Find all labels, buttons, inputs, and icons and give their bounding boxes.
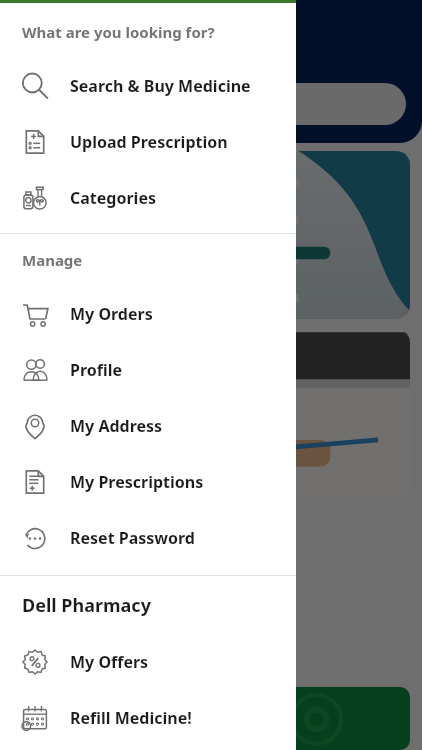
staticText: Manage — [22, 250, 83, 270]
button[interactable] — [0, 0, 422, 750]
button[interactable]: Reset Password — [0, 510, 296, 566]
staticText: Upload Prescription — [70, 131, 228, 153]
button[interactable]: Upload Prescription — [0, 114, 296, 170]
staticText: Reset Password — [70, 527, 195, 549]
button[interactable]: Search medicine and otc ... — [16, 83, 406, 125]
staticText: Dell Pharmacy — [22, 593, 151, 618]
staticText: What are you looking for? — [22, 22, 215, 42]
staticText: Search medicine and otc ... — [34, 94, 223, 114]
button[interactable]: Profile — [0, 342, 296, 398]
button[interactable]: My Address — [0, 398, 296, 454]
button[interactable]: Refill Medicine! — [0, 690, 296, 746]
button[interactable]: Search & Buy Medicine — [0, 58, 296, 114]
button[interactable]: Categories — [0, 170, 296, 226]
staticText: Order on WhatsApp — [32, 707, 199, 730]
button[interactable]: My Prescriptions — [0, 454, 296, 510]
button[interactable]: Order on WhatsApp — [12, 687, 410, 750]
button[interactable] — [12, 329, 410, 497]
staticText: Profile — [70, 359, 123, 381]
button[interactable]: My Offers — [0, 634, 296, 690]
button[interactable]: My Orders — [0, 286, 296, 342]
staticText: My Address — [70, 415, 163, 437]
button[interactable] — [12, 151, 410, 319]
staticText: Categories — [70, 187, 156, 209]
staticText: My Prescriptions — [70, 471, 204, 493]
staticText: My Orders — [70, 303, 153, 325]
staticText: My Offers — [70, 651, 149, 673]
button[interactable]: Manage Reminder — [12, 507, 410, 677]
staticText: Search & Buy Medicine — [70, 75, 251, 97]
staticText: Refill Medicine! — [70, 707, 192, 729]
